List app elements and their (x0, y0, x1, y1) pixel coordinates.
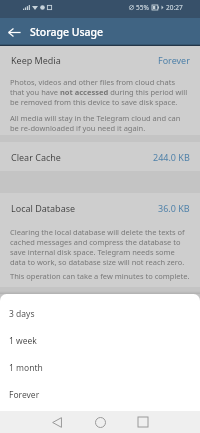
staticText: 1 month (9, 362, 43, 374)
button[interactable]: 3 days (0, 300, 200, 327)
button[interactable]: Local Database (0, 193, 200, 223)
button[interactable]: Keep Media (0, 46, 200, 73)
staticText: Photos, videos and other files from clou… (10, 77, 190, 107)
button[interactable]: Back (3, 18, 25, 46)
button[interactable]: Forever (0, 381, 200, 408)
button[interactable]: 1 month (0, 354, 200, 381)
staticText: Keep Media (11, 54, 61, 66)
staticText: 36.0 KB (158, 202, 190, 214)
button[interactable]: 1 week (0, 327, 200, 354)
button[interactable]: Back (46, 411, 68, 433)
staticText: Local Database (11, 202, 76, 214)
staticText: Forever (9, 389, 40, 401)
staticText: Storage Usage (30, 25, 104, 39)
button[interactable]: Clear Cache (0, 142, 200, 171)
staticText: Forever (158, 54, 190, 66)
staticText: 55% (136, 3, 149, 12)
staticText: 20:27 (166, 3, 183, 12)
staticText: Clearing the local database will delete … (10, 227, 190, 267)
staticText: 1 week (9, 335, 37, 347)
button[interactable]: Recent apps (132, 411, 154, 433)
staticText: Clear Cache (11, 151, 61, 163)
staticText: This operation can take a few minutes to… (10, 271, 190, 281)
staticText: 3 days (9, 308, 35, 320)
button[interactable]: Home (89, 411, 111, 433)
staticText: All media will stay in the Telegram clou… (10, 113, 190, 133)
staticText: 244.0 KB (153, 151, 190, 163)
